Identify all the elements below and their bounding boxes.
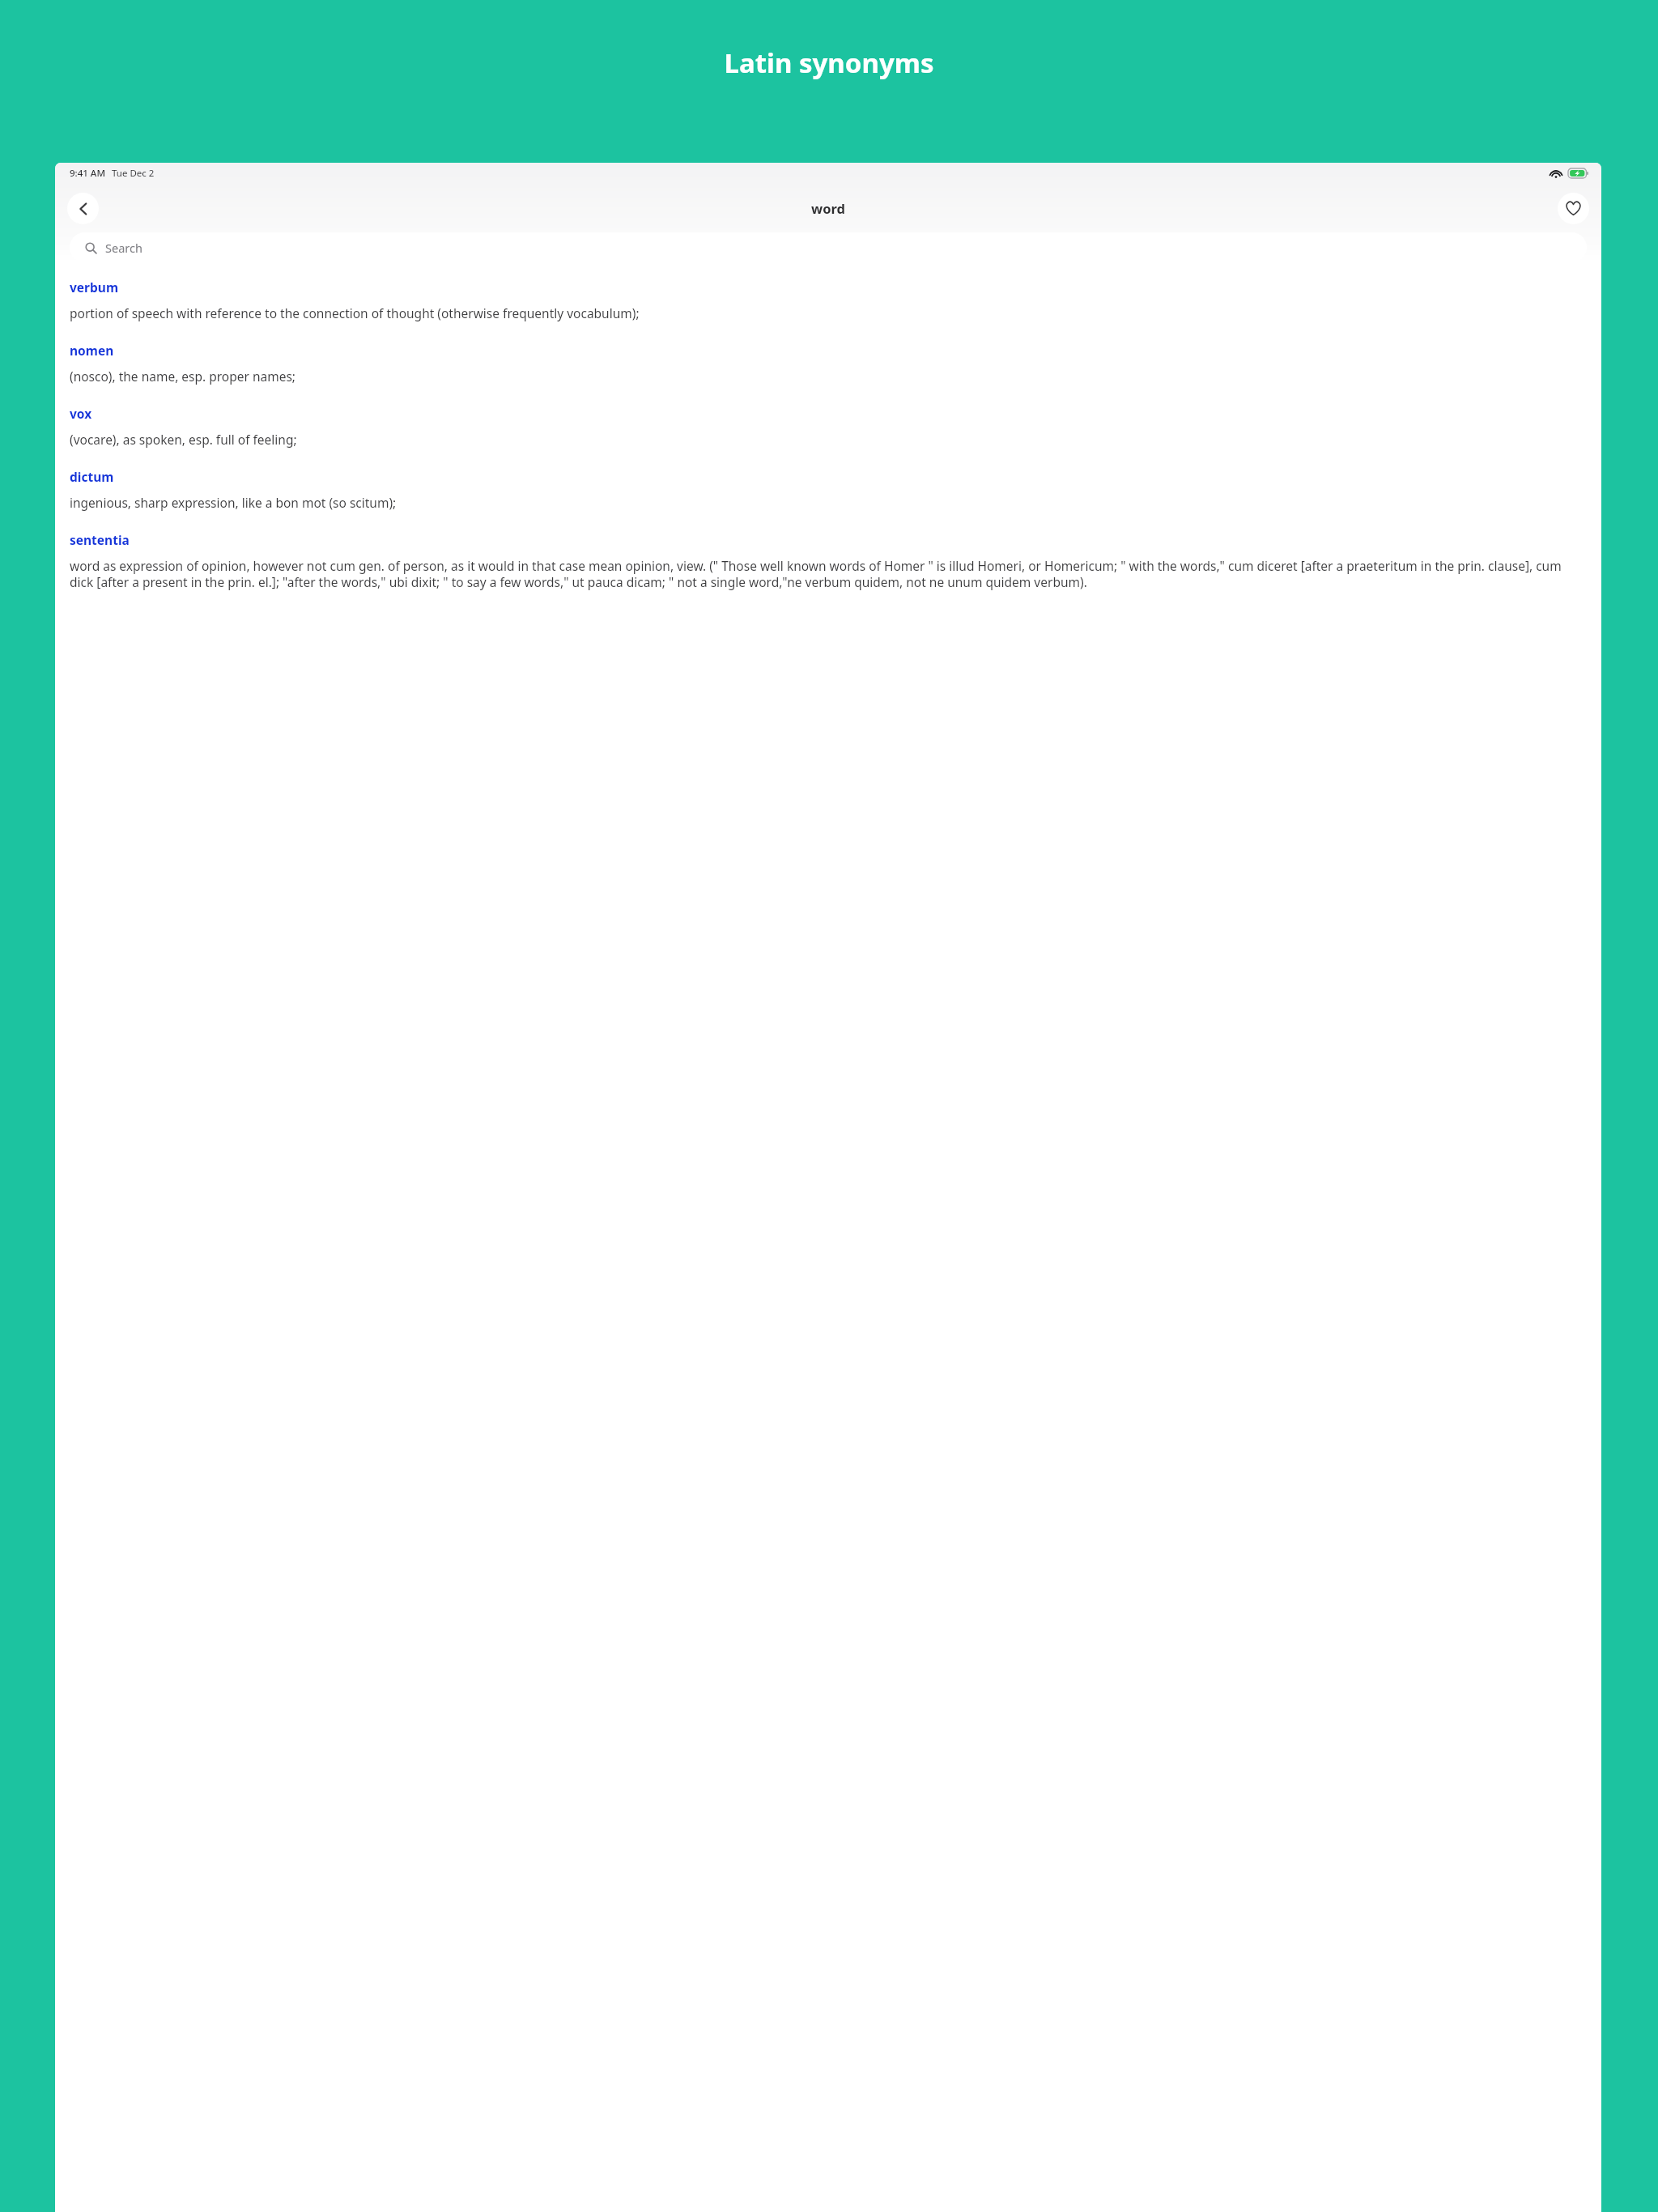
button[interactable]: Search xyxy=(70,232,1587,262)
button[interactable]: Back xyxy=(67,193,99,224)
staticText: (vocare), as spoken, esp. full of feelin… xyxy=(70,431,297,448)
button[interactable]: nomen xyxy=(70,342,1587,385)
staticText: ingenious, sharp expression, like a bon … xyxy=(70,494,397,511)
button[interactable]: sententia xyxy=(70,531,1587,590)
staticText: Latin synonyms xyxy=(0,45,1658,81)
staticText: (nosco), the name, esp. proper names; xyxy=(70,368,296,385)
staticText: Search xyxy=(105,240,142,256)
staticText: vox xyxy=(70,405,92,422)
staticText: Tue Dec 2 xyxy=(112,167,155,180)
button[interactable]: vox xyxy=(70,405,1587,448)
button[interactable]: Favorite xyxy=(1558,193,1589,224)
staticText: 9:41 AM xyxy=(70,167,105,180)
staticText: portion of speech with reference to the … xyxy=(70,304,640,321)
button[interactable]: verbum xyxy=(70,279,1587,321)
staticText: nomen xyxy=(70,342,114,359)
button[interactable]: dictum xyxy=(70,468,1587,511)
staticText: dictum xyxy=(70,468,114,485)
staticText: word as expression of opinion, however n… xyxy=(70,557,1587,590)
staticText: verbum xyxy=(70,279,119,296)
staticText: word xyxy=(811,199,845,217)
staticText: sententia xyxy=(70,531,130,548)
